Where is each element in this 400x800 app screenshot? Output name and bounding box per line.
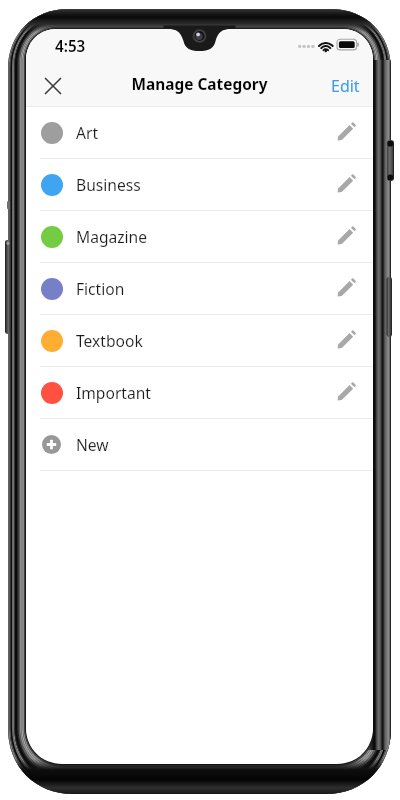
staticText: New [76, 434, 109, 455]
button[interactable]: New [26, 419, 373, 470]
button[interactable]: Edit [321, 67, 370, 105]
button[interactable]: Edit Important [325, 373, 365, 413]
staticText: Manage Category [26, 74, 373, 95]
button[interactable]: Textbook [26, 315, 373, 366]
button[interactable]: Business [26, 159, 373, 210]
button[interactable]: Edit Magazine [325, 217, 365, 257]
staticText: Important [76, 382, 151, 403]
staticText: 4:53 [55, 36, 86, 57]
button[interactable]: Art [26, 107, 373, 158]
button[interactable]: Edit Art [325, 113, 365, 153]
staticText: Art [76, 122, 99, 143]
button[interactable]: Close [31, 64, 75, 108]
button[interactable]: Important [26, 367, 373, 418]
staticText: Textbook [76, 330, 143, 351]
staticText: Magazine [76, 226, 148, 247]
staticText: Business [76, 174, 141, 195]
button[interactable]: Magazine [26, 211, 373, 262]
button[interactable]: Edit Business [325, 165, 365, 205]
staticText: Fiction [76, 278, 125, 299]
button[interactable]: Fiction [26, 263, 373, 314]
button[interactable]: Edit Textbook [325, 321, 365, 361]
button[interactable]: Edit Fiction [325, 269, 365, 309]
staticText: Edit [331, 75, 360, 97]
